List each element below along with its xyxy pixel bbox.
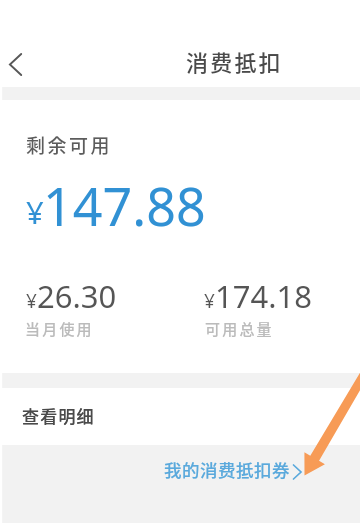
- staticText: 消费抵扣: [186, 45, 283, 77]
- button[interactable]: 我的消费抵扣券: [164, 457, 304, 482]
- staticText: 174.18: [215, 275, 312, 317]
- staticText: ¥: [204, 288, 215, 314]
- staticText: 可用总量: [205, 318, 274, 340]
- staticText: ¥: [26, 191, 44, 233]
- button[interactable]: Back: [0, 41, 44, 85]
- staticText: 我的消费抵扣券: [164, 457, 290, 482]
- staticText: 147.88: [43, 170, 206, 241]
- staticText: 26.30: [37, 275, 117, 317]
- staticText: 剩余可用: [26, 131, 113, 159]
- staticText: 当月使用: [25, 318, 94, 340]
- button[interactable]: 查看明细: [0, 388, 360, 445]
- staticText: 查看明细: [22, 403, 95, 428]
- staticText: 查看明细: [22, 403, 95, 428]
- staticText: ¥: [26, 288, 37, 314]
